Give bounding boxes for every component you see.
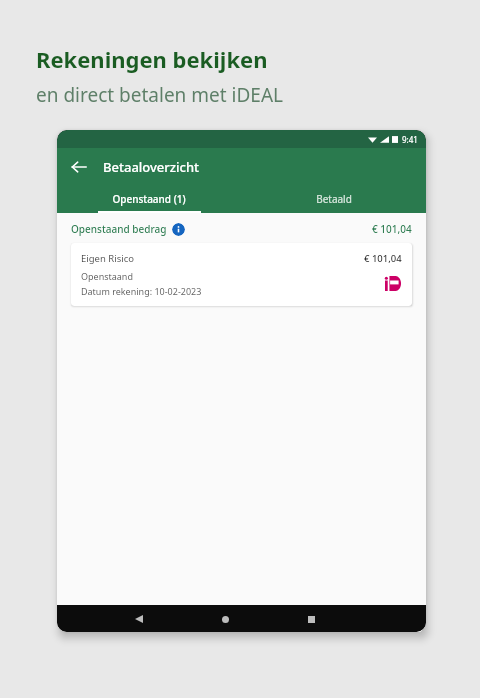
staticText: Openstaand <box>81 270 133 282</box>
staticText: € 101,04 <box>372 222 412 236</box>
button[interactable]: Information <box>172 223 185 236</box>
staticText: Betaald <box>316 192 352 206</box>
staticText: Openstaand (1) <box>112 192 186 206</box>
staticText: Openstaand bedrag <box>71 222 167 236</box>
staticText: Rekeningen bekijken <box>36 44 268 74</box>
staticText: Betaaloverzicht <box>103 158 200 176</box>
button[interactable]: Back <box>63 151 95 183</box>
staticText: Datum rekening: 10-02-2023 <box>81 285 202 297</box>
button[interactable]: Home <box>212 606 238 632</box>
button[interactable]: Back <box>126 606 152 632</box>
button[interactable]: Openstaand (1) <box>57 186 241 211</box>
button[interactable]: Recent apps <box>298 606 324 632</box>
staticText: en direct betalen met iDEAL <box>36 82 284 108</box>
staticText: € 101,04 <box>364 252 402 265</box>
button[interactable]: Eigen Risico <box>71 243 412 306</box>
staticText: 9:41 <box>402 134 418 145</box>
button[interactable]: Betaald <box>241 186 426 211</box>
button[interactable]: Pay with iDEAL <box>385 276 402 291</box>
staticText: Eigen Risico <box>81 252 134 265</box>
